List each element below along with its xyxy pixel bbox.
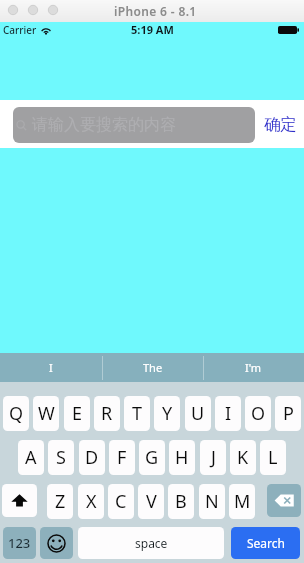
staticText: O	[251, 401, 266, 426]
button[interactable]: 确定	[261, 109, 299, 139]
button[interactable]: D	[79, 440, 105, 475]
staticText: Search	[247, 535, 285, 551]
button[interactable]: Backspace	[267, 484, 301, 517]
staticText: R	[101, 401, 113, 426]
staticText: The	[143, 360, 163, 375]
button[interactable]: S	[48, 440, 74, 475]
button[interactable]: 123	[3, 527, 36, 559]
button[interactable]: F	[109, 440, 135, 475]
staticText: H	[175, 445, 189, 470]
staticText: X	[86, 489, 97, 514]
staticText: iPhone 6 - 8.1	[114, 3, 197, 19]
button[interactable]: Emoji	[40, 527, 73, 559]
button[interactable]: R	[94, 396, 120, 431]
staticText: Z	[55, 489, 66, 514]
staticText: I'm	[245, 360, 262, 375]
button[interactable]: Z	[47, 484, 73, 519]
staticText: C	[115, 489, 127, 514]
staticText: K	[237, 445, 249, 470]
staticText: J	[211, 445, 216, 470]
staticText: F	[117, 445, 127, 470]
staticText: 请输入要搜索的内容	[32, 115, 176, 135]
staticText: space	[135, 535, 168, 551]
button[interactable]: L	[260, 440, 286, 475]
staticText: W	[38, 401, 55, 426]
button[interactable]: K	[230, 440, 256, 475]
button[interactable]: Q	[3, 396, 29, 431]
staticText: L	[268, 445, 278, 470]
staticText: 确定	[264, 114, 297, 135]
staticText: M	[234, 489, 251, 514]
staticText: Y	[162, 401, 173, 426]
staticText: Q	[9, 401, 24, 426]
button[interactable]: B	[168, 484, 194, 519]
button[interactable]: I	[215, 396, 241, 431]
button[interactable]: W	[33, 396, 59, 431]
button[interactable]: O	[245, 396, 271, 431]
button[interactable]: H	[169, 440, 195, 475]
button[interactable]: 请输入要搜索的内容	[13, 107, 255, 143]
staticText: A	[25, 445, 37, 470]
button[interactable]: Shift	[2, 484, 37, 517]
button[interactable]: X	[78, 484, 104, 519]
staticText: I	[225, 401, 232, 426]
button[interactable]: Search	[231, 527, 300, 559]
staticText: G	[145, 445, 159, 470]
button[interactable]: C	[108, 484, 134, 519]
staticText: 5:19 AM	[131, 22, 174, 37]
button[interactable]: The	[102, 353, 203, 382]
staticText: P	[283, 401, 294, 426]
staticText: S	[56, 445, 66, 470]
button[interactable]: G	[139, 440, 165, 475]
staticText: 123	[8, 534, 31, 552]
button[interactable]: E	[64, 396, 90, 431]
button[interactable]: T	[124, 396, 150, 431]
staticText: B	[175, 489, 187, 514]
staticText: D	[85, 445, 99, 470]
button[interactable]: M	[229, 484, 255, 519]
button[interactable]: N	[199, 484, 225, 519]
button[interactable]: I'm	[203, 353, 304, 382]
button[interactable]: I	[0, 353, 102, 382]
staticText: V	[146, 489, 157, 514]
button[interactable]: Y	[154, 396, 180, 431]
staticText: U	[191, 401, 205, 426]
staticText: T	[132, 401, 143, 426]
button[interactable]: A	[18, 440, 44, 475]
button[interactable]: J	[200, 440, 226, 475]
button[interactable]: V	[138, 484, 164, 519]
staticText: E	[72, 401, 83, 426]
staticText: I	[49, 360, 53, 375]
button[interactable]: space	[78, 527, 224, 559]
staticText: N	[205, 489, 219, 514]
button[interactable]: P	[275, 396, 301, 431]
button[interactable]: U	[185, 396, 211, 431]
staticText: Carrier	[3, 23, 37, 37]
